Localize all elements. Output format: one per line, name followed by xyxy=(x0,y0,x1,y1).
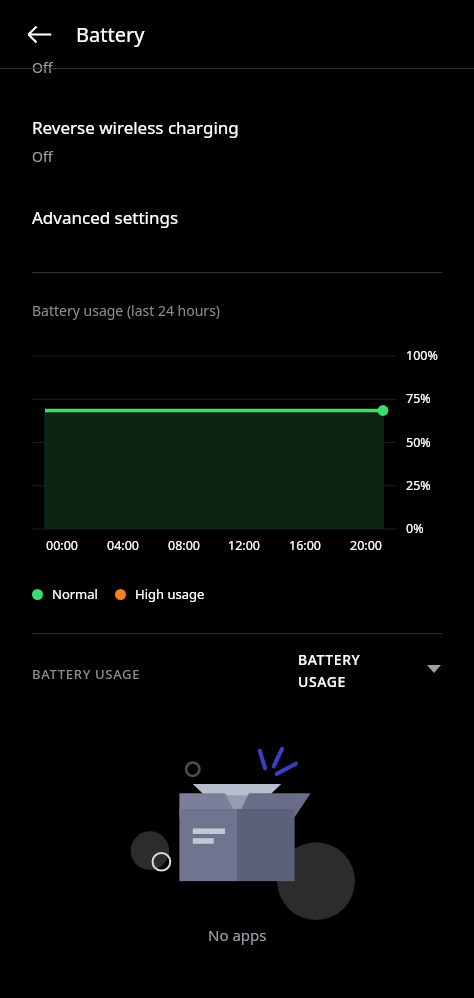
other: Expand battery usage menu xyxy=(424,659,444,679)
staticText: Off xyxy=(32,58,53,77)
staticText: 12:00 xyxy=(228,537,260,554)
staticText: Battery usage (last 24 hours) xyxy=(32,301,221,320)
staticText: High usage xyxy=(135,585,205,603)
staticText: 16:00 xyxy=(289,537,321,554)
button[interactable]: Reverse wireless charging xyxy=(0,108,474,174)
staticText: 20:00 xyxy=(350,537,382,554)
staticText: Off xyxy=(32,147,53,166)
staticText: Advanced settings xyxy=(32,206,179,229)
button[interactable]: Advanced settings xyxy=(0,198,474,237)
staticText: 00:00 xyxy=(46,537,78,554)
staticText: BATTERY USAGE xyxy=(32,665,141,683)
staticText: 50% xyxy=(406,434,431,451)
staticText: 75% xyxy=(406,390,431,407)
staticText: 08:00 xyxy=(168,537,200,554)
staticText: 100% xyxy=(406,347,438,364)
staticText: No apps xyxy=(208,925,267,945)
staticText: Reverse wireless charging xyxy=(32,116,239,139)
button[interactable]: Back xyxy=(16,11,62,57)
staticText: Normal xyxy=(52,585,98,603)
staticText: BATTERY USAGE xyxy=(298,650,361,691)
button[interactable]: BATTERY USAGE xyxy=(298,650,450,691)
button[interactable]: Off xyxy=(0,60,474,82)
staticText: 0% xyxy=(406,520,424,537)
staticText: Battery xyxy=(76,21,145,48)
staticText: 04:00 xyxy=(107,537,139,554)
staticText: 25% xyxy=(406,477,431,494)
